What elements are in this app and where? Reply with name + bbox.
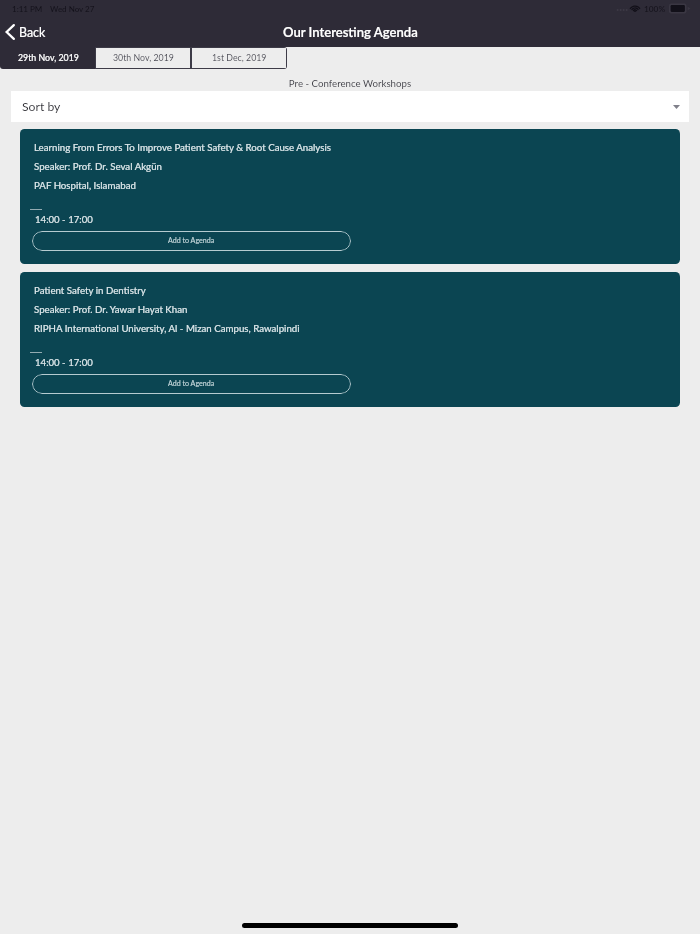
button[interactable]: Add to Agenda [32, 231, 351, 251]
button[interactable]: Patient Safety in Dentistry [20, 272, 680, 407]
staticText: 14:00 - 17:00 [35, 214, 93, 226]
staticText: RIPHA International University, Al - Miz… [34, 322, 300, 334]
button[interactable]: 1st Dec, 2019 [192, 48, 286, 68]
staticText: PAF Hospital, Islamabad [34, 179, 136, 191]
staticText: Patient Safety in Dentistry [34, 284, 146, 296]
other: Wi-Fi [630, 4, 640, 13]
other: Open sort menu [673, 105, 680, 109]
button[interactable]: Learning From Errors To Improve Patient … [20, 129, 680, 264]
staticText: 29th Nov, 2019 [18, 52, 79, 63]
button[interactable]: Sort by [11, 91, 689, 122]
staticText: Add to Agenda [168, 379, 215, 388]
staticText: Our Interesting Agenda [283, 24, 418, 40]
button[interactable]: Add to Agenda [32, 374, 351, 394]
staticText: 14:00 - 17:00 [35, 357, 93, 369]
staticText: Wed Nov 27 [50, 4, 95, 14]
staticText: 100% [644, 4, 666, 14]
button[interactable]: 29th Nov, 2019 [0, 47, 96, 69]
other: Back [4, 24, 16, 40]
staticText: Speaker: Prof. Dr. Seval Akgün [34, 160, 162, 172]
button[interactable]: 30th Nov, 2019 [96, 48, 190, 68]
staticText: Pre - Conference Workshops [0, 77, 700, 89]
staticText: Add to Agenda [168, 236, 215, 245]
staticText: Sort by [22, 99, 61, 114]
staticText: 1st Dec, 2019 [212, 52, 267, 63]
staticText: Learning From Errors To Improve Patient … [34, 141, 331, 153]
staticText: 30th Nov, 2019 [113, 52, 174, 63]
staticText: 1:11 PM [12, 4, 43, 14]
staticText: Back [19, 25, 46, 40]
staticText: Speaker: Prof. Dr. Yawar Hayat Khan [34, 303, 188, 315]
button[interactable]: Back [4, 17, 46, 47]
